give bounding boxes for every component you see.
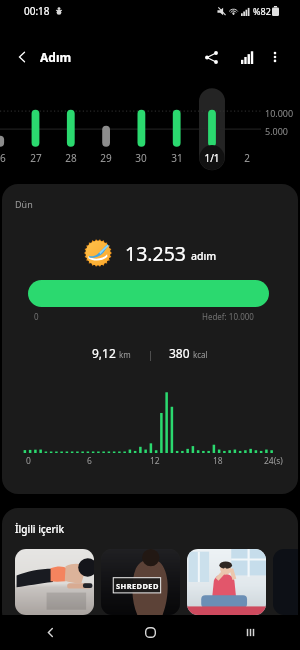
staticText: 28 — [65, 151, 77, 165]
staticText: 12 — [150, 455, 160, 467]
staticText: 27 — [30, 151, 42, 165]
button[interactable]: Share — [194, 40, 228, 74]
button[interactable]: Back — [0, 615, 100, 650]
staticText: 0 — [26, 455, 31, 467]
button[interactable]: Related content — [101, 549, 180, 615]
staticText: Adım — [40, 49, 72, 65]
staticText: kcal — [193, 349, 208, 360]
staticText: 10.000 — [265, 107, 294, 119]
staticText: 13.253 — [125, 240, 186, 267]
button[interactable]: Related content — [15, 549, 94, 615]
staticText: 24(s) — [264, 455, 283, 467]
staticText: adım — [191, 249, 217, 263]
button[interactable]: Back — [6, 41, 38, 73]
staticText: 1/1 — [204, 151, 220, 165]
staticText: 9,12 — [92, 345, 116, 361]
button[interactable]: More options — [258, 40, 292, 74]
staticText: %82 — [253, 5, 271, 17]
staticText: Dün — [15, 198, 33, 210]
staticText: 5.000 — [265, 125, 289, 137]
staticText: 31 — [171, 151, 183, 165]
staticText: 2 — [244, 151, 250, 165]
staticText: 0 — [34, 311, 39, 322]
button[interactable]: Home — [100, 615, 200, 650]
staticText: 18 — [213, 455, 223, 467]
staticText: 29 — [100, 151, 112, 165]
staticText: SHREDDED — [116, 581, 159, 591]
button[interactable]: Dün — [2, 184, 298, 494]
staticText: 380 — [169, 345, 190, 361]
staticText: 30 — [135, 151, 147, 165]
staticText: 00:18 — [24, 4, 50, 18]
button[interactable]: Related content — [187, 549, 266, 615]
button[interactable]: Chart — [230, 40, 264, 74]
button[interactable]: Recents — [200, 615, 300, 650]
staticText: Hedef: 10.000 — [202, 311, 254, 322]
staticText: İlgili içerik — [15, 522, 65, 536]
staticText: 6 — [87, 455, 92, 467]
staticText: 26 — [0, 151, 6, 165]
staticText: km — [119, 349, 131, 360]
